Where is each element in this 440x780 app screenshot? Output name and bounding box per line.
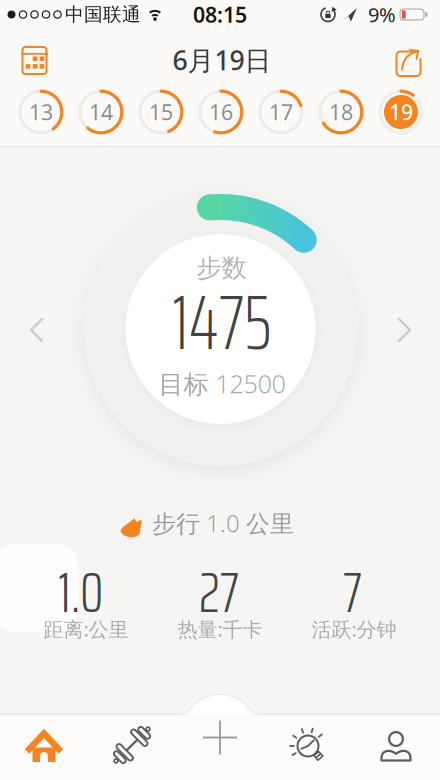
button[interactable] [272, 714, 344, 780]
button[interactable]: 13 [18, 89, 63, 134]
staticText: 27 [199, 548, 239, 636]
staticText: 13 [29, 98, 53, 126]
staticText: 17 [269, 98, 293, 126]
staticText: 目标 12500 [158, 367, 285, 400]
staticText: 步行 1.0 公里 [152, 507, 294, 539]
button[interactable]: 18 [318, 89, 363, 134]
button[interactable] [382, 308, 426, 352]
staticText: 距离:公里 [43, 616, 128, 642]
button[interactable]: 17 [258, 89, 303, 134]
staticText: 热量:千卡 [177, 616, 262, 642]
button[interactable] [8, 714, 80, 780]
staticText: 中国联通 [65, 3, 141, 26]
button[interactable] [12, 38, 56, 82]
button[interactable] [360, 714, 432, 780]
button[interactable]: 14 [78, 89, 123, 134]
staticText: 15 [149, 98, 173, 126]
staticText: 1.0 [58, 548, 103, 636]
button[interactable] [182, 699, 258, 775]
staticText: 步数 [196, 252, 246, 283]
staticText: 7 [343, 548, 362, 636]
staticText: 16 [209, 98, 233, 126]
button[interactable] [96, 714, 168, 780]
staticText: 08:15 [193, 0, 247, 29]
button[interactable] [15, 308, 59, 352]
staticText: 18 [329, 98, 353, 126]
button[interactable]: 16 [198, 89, 243, 134]
button[interactable]: 19 [378, 89, 423, 134]
button[interactable] [387, 39, 431, 83]
staticText: 1475 [172, 263, 272, 382]
staticText: 14 [89, 98, 113, 126]
staticText: 6月19日 [172, 42, 271, 78]
staticText: 19 [389, 98, 413, 126]
button[interactable]: 15 [138, 89, 183, 134]
staticText: 活跃:分钟 [311, 616, 396, 642]
staticText: 9% [368, 1, 396, 28]
